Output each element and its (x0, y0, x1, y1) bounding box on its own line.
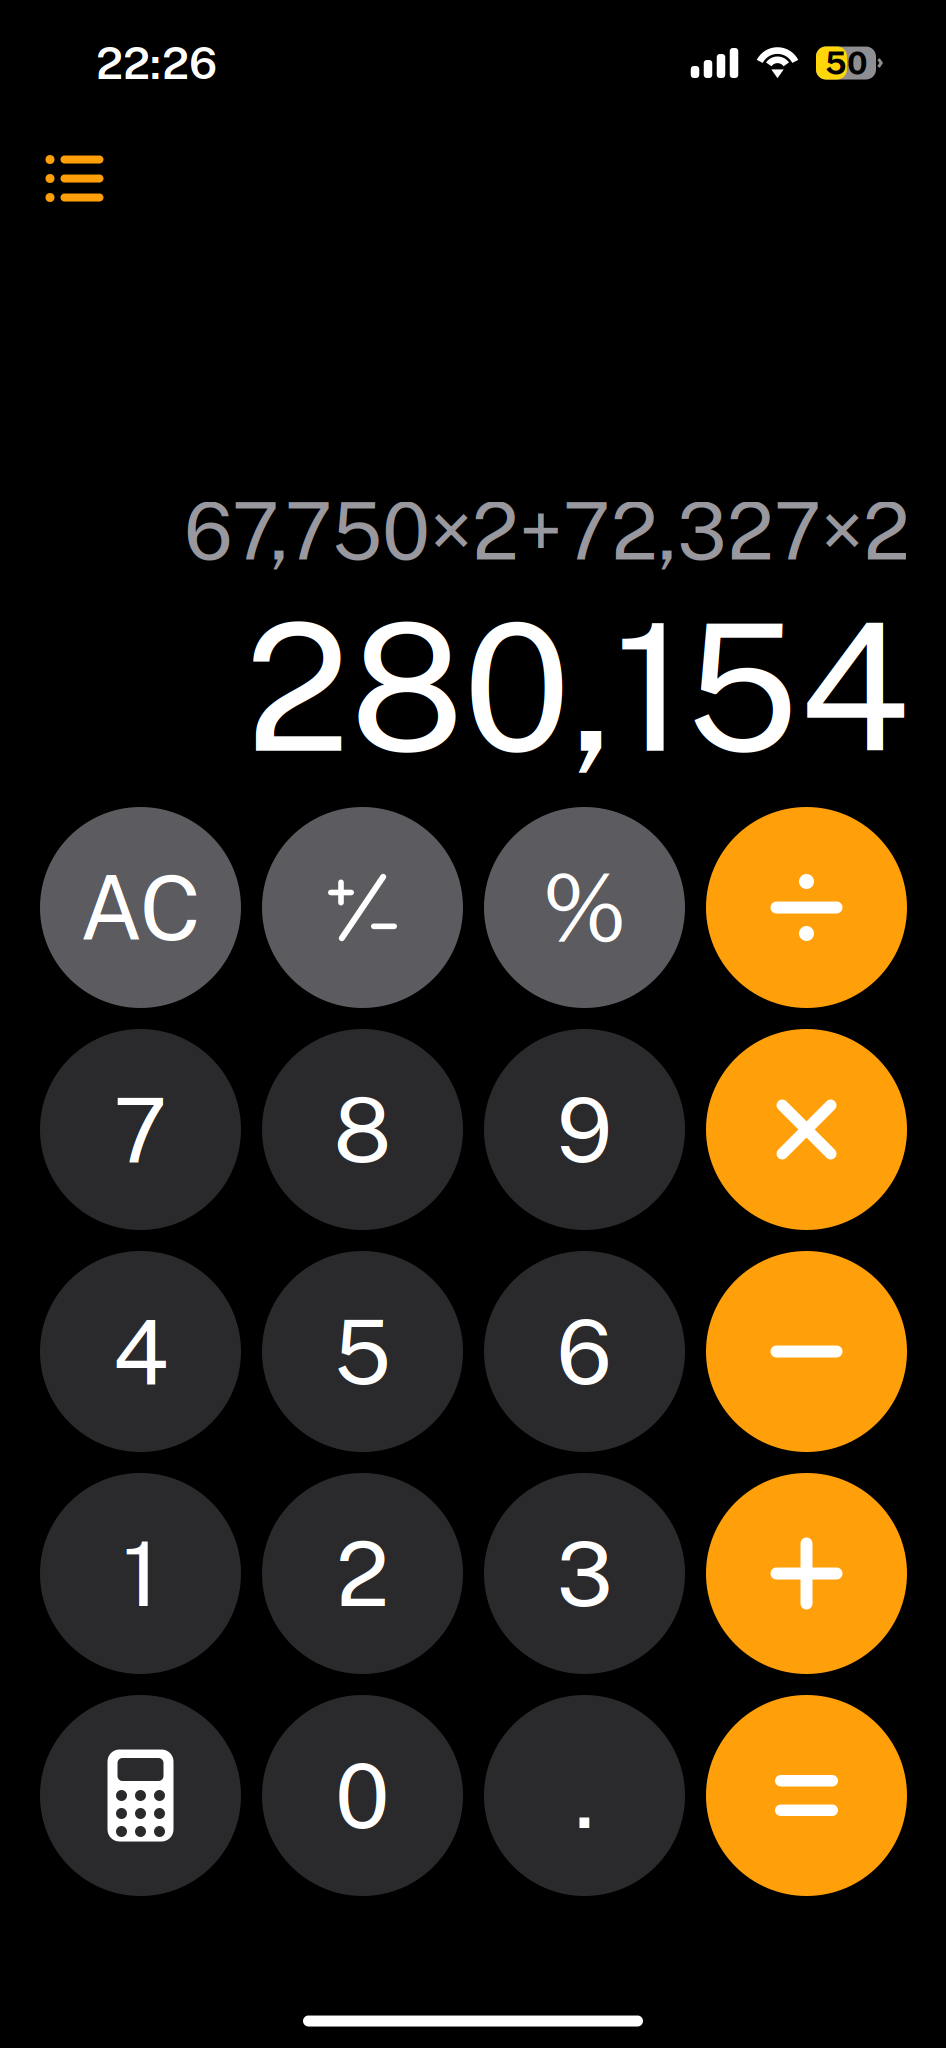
staticText: 9 (556, 1077, 612, 1182)
button[interactable]: Multiply (706, 1029, 907, 1230)
button[interactable]: 9 (484, 1029, 685, 1230)
button[interactable]: 4 (40, 1251, 241, 1452)
staticText: 1 (122, 1521, 158, 1626)
staticText: 67,750×2+72,327×2 (184, 485, 910, 577)
staticText: 0 (335, 1743, 390, 1848)
staticText: 2 (336, 1521, 389, 1626)
button[interactable]: Calculator (40, 1695, 241, 1896)
button[interactable]: Plus or minus (262, 807, 463, 1008)
button[interactable]: 6 (484, 1251, 685, 1452)
button[interactable]: 8 (262, 1029, 463, 1230)
button[interactable]: History (22, 132, 126, 224)
staticText: 280,154 (245, 584, 910, 790)
button[interactable]: 2 (262, 1473, 463, 1674)
staticText: 6 (556, 1299, 612, 1404)
button[interactable]: 0 (262, 1695, 463, 1896)
staticText: 8 (333, 1077, 391, 1182)
button[interactable]: 7 (40, 1029, 241, 1230)
button[interactable]: . (484, 1695, 685, 1896)
staticText: 22:26 (96, 37, 217, 89)
staticText: % (542, 853, 626, 962)
staticText: 5 (334, 1299, 391, 1404)
button[interactable]: Minus (706, 1251, 907, 1452)
staticText: 7 (113, 1077, 167, 1182)
button[interactable]: Divide (706, 807, 907, 1008)
button[interactable]: 3 (484, 1473, 685, 1674)
staticText: AC (79, 855, 201, 960)
button[interactable]: 5 (262, 1251, 463, 1452)
staticText: . (574, 1743, 594, 1848)
staticText: 3 (556, 1521, 612, 1626)
button[interactable]: Plus (706, 1473, 907, 1674)
button[interactable]: Equals (706, 1695, 907, 1896)
button[interactable]: AC (40, 807, 241, 1008)
button[interactable]: 1 (40, 1473, 241, 1674)
staticText: 4 (112, 1299, 168, 1404)
staticText: 50 (825, 44, 868, 82)
button[interactable]: % (484, 807, 685, 1008)
